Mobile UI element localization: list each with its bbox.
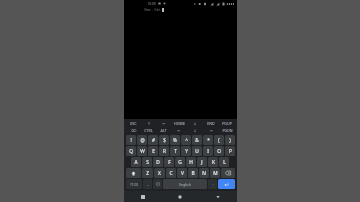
button[interactable]: Backspace [221,168,235,178]
button[interactable]: Q [126,146,136,156]
staticText: M [213,170,218,177]
button[interactable]: B [188,168,198,178]
button[interactable]: HOME [171,120,187,127]
staticText: K [212,159,215,166]
button[interactable]: W [137,146,147,156]
staticText: ESC [130,121,137,126]
staticText: A [134,159,138,166]
button[interactable]: ↓ [187,127,203,134]
staticText: @ [140,137,145,143]
staticText: U [195,148,199,155]
staticText: V [181,170,184,177]
button[interactable]: Home [161,191,199,202]
button[interactable]: ALT [156,127,171,134]
button[interactable]: L [219,157,229,167]
button[interactable]: J [197,157,207,167]
button[interactable]: ⌦ [126,127,141,134]
button[interactable]: , [143,179,152,189]
button[interactable]: ← [171,127,187,134]
button[interactable]: M [210,168,220,178]
staticText: % [173,137,177,143]
staticText: # [152,137,155,143]
button[interactable]: O [214,146,224,156]
staticText: G [178,159,182,166]
staticText: F [168,159,171,166]
staticText: H [189,159,193,166]
button[interactable]: ↓ [187,120,203,127]
staticText: ALT [160,128,167,133]
button[interactable]: Y [181,146,191,156]
staticText: END [207,121,215,126]
button[interactable]: H [186,157,196,167]
button[interactable]: English [163,179,207,189]
button[interactable]: @ [137,135,147,145]
staticText: X [158,170,161,177]
button[interactable]: PGDN [219,127,235,134]
staticText: T [174,148,177,155]
button[interactable]: * [203,135,213,145]
staticText: CTRL [144,128,153,133]
button[interactable]: ! [126,135,136,145]
staticText: . [212,181,214,187]
button[interactable]: END [203,120,219,127]
staticText: ← [177,129,181,133]
staticText: L [223,159,226,166]
button[interactable]: Recents [124,191,161,202]
staticText: Y [185,148,188,155]
staticText: HOME [174,121,185,126]
staticText: 10:09 [147,2,156,6]
staticText: ↓ [193,122,197,126]
button[interactable]: Switch language [153,179,162,189]
staticText: J [201,159,203,166]
staticText: → [209,129,213,133]
button[interactable]: P [225,146,235,156]
staticText: ⌦ [131,129,137,133]
button[interactable]: ( [214,135,224,145]
staticText: ! [130,137,132,143]
button[interactable]: $ [159,135,169,145]
button[interactable]: % [170,135,180,145]
button[interactable]: Z [142,168,153,178]
button[interactable]: ^ [181,135,191,145]
button[interactable]: PGUP [219,120,235,127]
button[interactable]: . [208,179,217,189]
button[interactable]: A [131,157,141,167]
staticText: P [229,148,232,155]
staticText: Q [129,148,133,155]
staticText: ← [162,122,166,126]
button[interactable]: N [199,168,209,178]
button[interactable]: ESC [126,120,141,127]
button[interactable]: I [203,146,213,156]
button[interactable]: G [175,157,185,167]
button[interactable]: Back [199,191,237,202]
button[interactable]: ?123 [126,179,142,189]
staticText: $ [163,137,166,143]
staticText: D [156,159,160,166]
staticText: PGUP [222,121,232,126]
button[interactable]: R [159,146,169,156]
button[interactable]: Enter [218,179,235,189]
button[interactable]: V [177,168,187,178]
button[interactable]: T [170,146,180,156]
button[interactable]: C [166,168,176,178]
button[interactable]: → [203,127,219,134]
button[interactable]: ↑ [141,120,156,127]
button[interactable]: & [192,135,202,145]
button[interactable]: F [164,157,174,167]
button[interactable]: U [192,146,202,156]
button[interactable]: ← [156,120,171,127]
button[interactable]: Shift [126,168,141,178]
button[interactable]: D [153,157,163,167]
staticText: O [217,148,221,155]
button[interactable]: E [148,146,158,156]
staticText: ) [229,137,231,143]
button[interactable]: CTRL [141,127,156,134]
staticText: ( [218,137,220,143]
staticText: PGDN [222,128,233,133]
button[interactable]: X [154,168,165,178]
button[interactable]: S [142,157,152,167]
button[interactable]: # [148,135,158,145]
button[interactable]: K [208,157,218,167]
staticText: ↓ [193,129,197,133]
button[interactable]: ) [225,135,235,145]
